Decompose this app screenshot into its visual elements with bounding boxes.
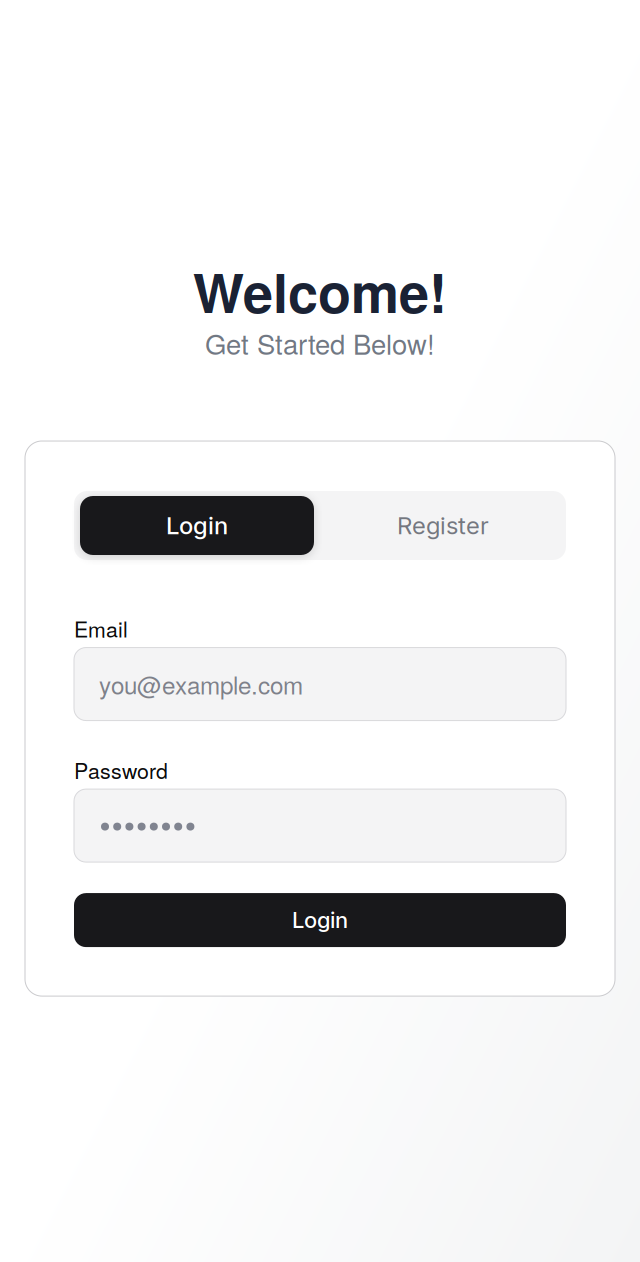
staticText: Email <box>74 613 128 643</box>
button[interactable]: Login <box>74 893 566 947</box>
staticText: Welcome! <box>193 252 447 330</box>
staticText: Login <box>166 511 228 540</box>
staticText: Password <box>74 754 168 785</box>
staticText: Login <box>292 907 348 933</box>
staticText: Get Started Below! <box>205 323 435 363</box>
staticText: Register <box>397 511 489 540</box>
staticText: you@example.com <box>99 667 303 701</box>
button[interactable]: Login <box>80 496 314 555</box>
button[interactable]: Register <box>314 496 560 555</box>
